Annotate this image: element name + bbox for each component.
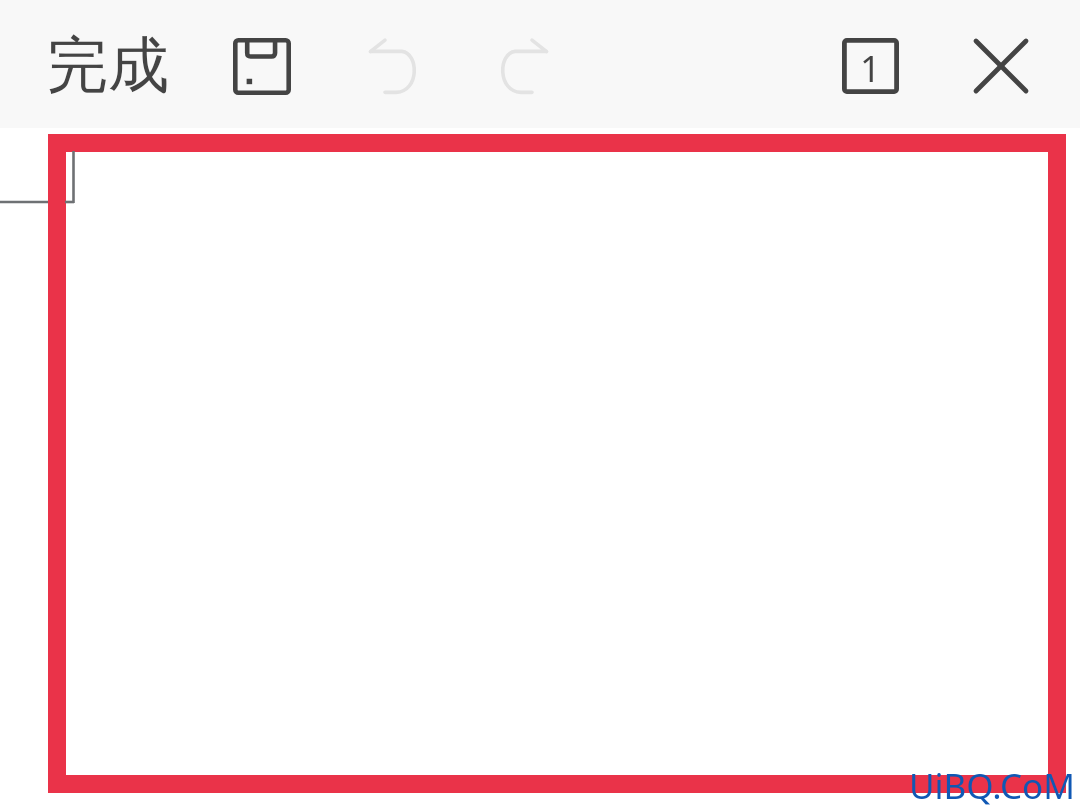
button[interactable]: Redo	[478, 26, 570, 106]
staticText: UiBQ.CoM	[909, 762, 1075, 810]
button[interactable]: Undo	[346, 26, 438, 106]
button[interactable]: Save	[214, 26, 310, 106]
button[interactable]: Page count	[828, 26, 912, 106]
button[interactable]: 完成	[36, 22, 180, 108]
staticText: 1	[860, 44, 881, 93]
staticText: 完成	[47, 27, 169, 104]
button[interactable]: Close	[960, 26, 1042, 106]
